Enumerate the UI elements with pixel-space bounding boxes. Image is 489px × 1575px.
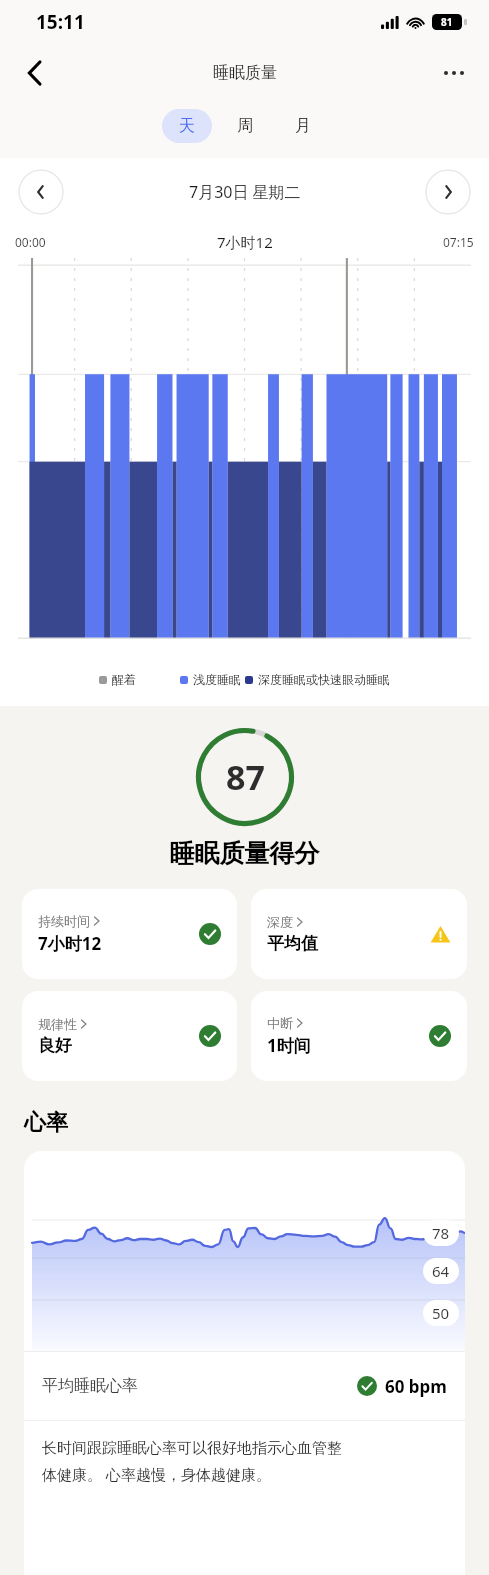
staticText: 深度: [267, 914, 293, 930]
button[interactable]: More options: [431, 50, 477, 96]
staticText: 平均值: [267, 933, 318, 954]
button[interactable]: 规律性: [22, 991, 237, 1081]
staticText: 周: [237, 116, 253, 136]
button[interactable]: Next day: [425, 169, 471, 215]
staticText: 持续时间: [38, 913, 90, 929]
staticText: 78: [432, 1223, 450, 1243]
staticText: 良好: [38, 1035, 72, 1056]
button[interactable]: 月: [278, 109, 328, 143]
staticText: 07:15: [443, 234, 474, 250]
staticText: 睡眠质量: [213, 63, 277, 83]
staticText: 长时间跟踪睡眠心率可以很好地指示心血管整 体健康。 心率越慢，身体越健康。: [42, 1439, 342, 1485]
button[interactable]: 中断: [251, 991, 467, 1081]
button[interactable]: Back: [12, 50, 58, 96]
staticText: 00:00: [15, 234, 46, 250]
staticText: 规律性: [38, 1016, 77, 1032]
staticText: 月: [295, 116, 311, 136]
staticText: 15:11: [36, 9, 85, 35]
staticText: 睡眠质量得分: [0, 838, 489, 869]
button[interactable]: 平均睡眠心率: [24, 1352, 465, 1420]
staticText: 1时间: [267, 1034, 311, 1057]
button[interactable]: 深度: [251, 889, 467, 979]
staticText: 平均睡眠心率: [42, 1376, 138, 1396]
staticText: 天: [179, 116, 195, 136]
staticText: 7小时12: [38, 932, 102, 955]
staticText: 7月30日 星期二: [189, 181, 301, 203]
staticText: 深度睡眠或快速眼动睡眠: [258, 672, 390, 687]
button[interactable]: 天: [162, 109, 212, 143]
staticText: 50: [432, 1303, 450, 1323]
staticText: 中断: [267, 1015, 293, 1031]
staticText: 醒着: [112, 672, 136, 687]
button[interactable]: Previous day: [18, 169, 64, 215]
button[interactable]: 周: [220, 109, 270, 143]
button[interactable]: 持续时间: [22, 889, 237, 979]
staticText: 浅度睡眠: [193, 672, 241, 687]
staticText: 7小时12: [217, 232, 273, 252]
staticText: 64: [432, 1261, 450, 1281]
staticText: 60 bpm: [385, 1375, 447, 1398]
staticText: 心率: [24, 1109, 68, 1137]
staticText: 81: [441, 15, 453, 29]
staticText: 87: [226, 754, 265, 800]
